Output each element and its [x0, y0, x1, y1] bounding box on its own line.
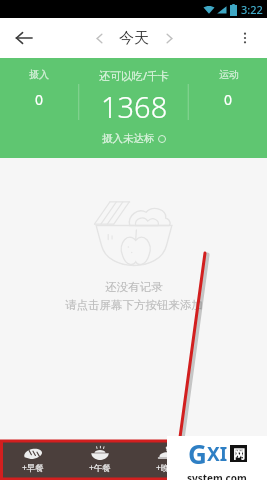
staticText: +早餐: [22, 462, 44, 474]
button[interactable]: Back: [6, 20, 42, 56]
button[interactable]: 摄入未达标: [102, 132, 166, 145]
staticText: XI: [207, 441, 228, 467]
staticText: 摄入: [29, 68, 49, 81]
staticText: 还可以吃/千卡: [99, 68, 170, 83]
button[interactable]: +早餐: [0, 442, 66, 480]
staticText: +午餐: [89, 462, 111, 474]
staticText: 3:22: [241, 2, 263, 17]
staticText: G: [188, 436, 207, 471]
button[interactable]: Next day: [155, 24, 183, 52]
button[interactable]: [200, 442, 267, 480]
staticText: 0: [35, 90, 44, 109]
staticText: 运动: [219, 68, 239, 81]
button[interactable]: +晚餐: [133, 442, 200, 480]
button[interactable]: More options: [227, 20, 263, 56]
staticText: system.com: [187, 471, 247, 480]
staticText: 请点击屏幕下方按钮来添加: [65, 298, 203, 312]
staticText: 今天: [119, 29, 149, 48]
staticText: 1368: [101, 87, 168, 126]
staticText: 0: [224, 90, 233, 109]
button[interactable]: Previous day: [85, 24, 113, 52]
staticText: 还没有记录: [105, 280, 163, 294]
staticText: +晚餐: [156, 462, 178, 474]
staticText: 网: [233, 446, 245, 461]
staticText: 摄入未达标: [102, 132, 155, 145]
button[interactable]: +午餐: [66, 442, 133, 480]
